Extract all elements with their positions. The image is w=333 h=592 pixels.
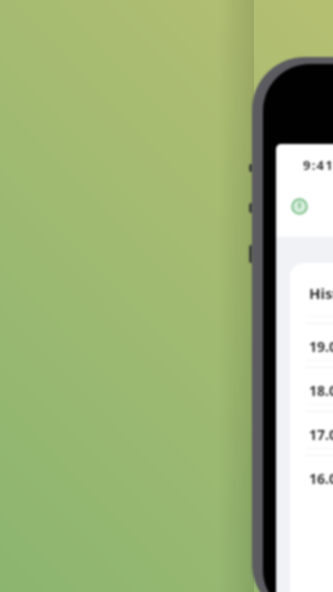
button[interactable]: 18.05.2024: [290, 360, 333, 404]
staticText: 9:41: [303, 156, 333, 174]
staticText: 16.05.2024: [309, 469, 333, 488]
staticText: 18.05.2024: [309, 381, 333, 400]
staticText: 19.05.2024: [309, 337, 333, 356]
staticText: History: [309, 283, 333, 303]
button[interactable]: 17.05.2024: [290, 404, 333, 448]
staticText: 17.05.2024: [309, 425, 333, 444]
button[interactable]: Info: [291, 198, 308, 215]
button[interactable]: 16.05.2024: [290, 448, 333, 492]
button[interactable]: 19.05.2024: [290, 316, 333, 360]
